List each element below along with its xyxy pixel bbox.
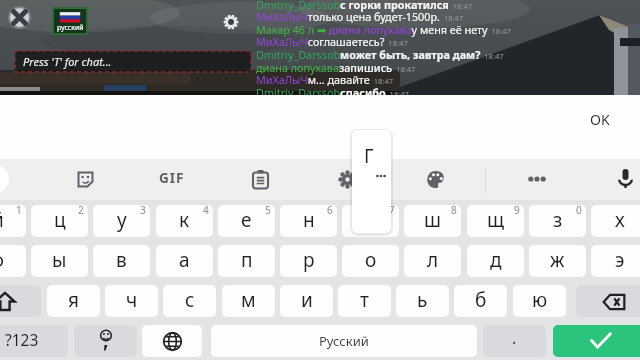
staticText: МиХаЛыЧтолько цена будет-1500р. 18:47	[256, 9, 464, 24]
staticText: GIF	[159, 169, 185, 187]
button[interactable]: н	[280, 205, 337, 237]
button[interactable]: Shift	[0, 285, 41, 317]
button[interactable]: я	[47, 285, 100, 317]
staticText: ф	[0, 247, 5, 273]
button[interactable]: Русский	[211, 325, 477, 357]
button[interactable]: о	[342, 245, 399, 277]
button[interactable]: а	[156, 245, 213, 277]
button[interactable]: ч	[105, 285, 158, 317]
button[interactable]: GIF	[154, 159, 186, 200]
staticText: ж	[550, 247, 565, 273]
other: Clipboard	[252, 170, 269, 189]
staticText: п	[241, 247, 253, 273]
staticText: Press 'T' for chat...	[23, 54, 112, 69]
staticText: к	[179, 207, 190, 233]
button[interactable]: Backspace	[576, 285, 640, 317]
button[interactable]: ж	[529, 245, 586, 277]
button[interactable]: ь	[396, 285, 449, 317]
button[interactable]: Clipboard	[243, 162, 277, 196]
button[interactable]: ?123	[0, 325, 68, 357]
button[interactable]: More options	[520, 162, 554, 196]
staticText: й	[0, 207, 4, 233]
staticText: OK	[590, 110, 610, 129]
button[interactable]: ы	[31, 245, 88, 277]
button[interactable]: э	[591, 245, 640, 277]
staticText: ы	[52, 247, 67, 273]
button[interactable]: Settings	[224, 15, 238, 29]
button[interactable]: е	[218, 205, 275, 237]
staticText: ь	[417, 287, 428, 313]
button[interactable]: г	[342, 205, 399, 237]
staticText: Г	[364, 143, 374, 169]
staticText: 6	[327, 205, 333, 217]
staticText: у	[117, 207, 127, 233]
button[interactable]: м	[222, 285, 275, 317]
button[interactable]: ш	[404, 205, 461, 237]
button[interactable]: х	[591, 205, 640, 237]
button[interactable]: Language	[53, 8, 87, 34]
button[interactable]: Themes	[419, 162, 453, 196]
staticText: диана лопухавазапишись 18:47	[256, 60, 416, 75]
staticText: 8	[451, 205, 457, 217]
staticText: с	[185, 287, 195, 313]
button[interactable]: п	[218, 245, 275, 277]
button[interactable]: .	[483, 325, 546, 357]
button[interactable]: Keyboard settings	[330, 162, 364, 196]
staticText: д	[490, 247, 502, 273]
button[interactable]: т	[338, 285, 391, 317]
button[interactable]: ф	[0, 245, 26, 277]
button[interactable]: и	[280, 285, 333, 317]
button[interactable]: OK	[560, 102, 640, 136]
button[interactable]: л	[404, 245, 461, 277]
staticText: МиХаЛыЧм... давайте 18:47	[256, 72, 394, 87]
button[interactable]: ц	[31, 205, 88, 237]
button[interactable]: с	[163, 285, 216, 317]
button[interactable]: щ	[467, 205, 524, 237]
staticText: б	[475, 287, 487, 313]
button[interactable]: р	[280, 245, 337, 277]
button[interactable]: Search	[0, 165, 9, 193]
staticText: ц	[54, 207, 66, 233]
other: Keyboard settings	[339, 171, 356, 188]
staticText: э	[615, 247, 625, 273]
staticText: русский	[57, 23, 84, 33]
staticText: я	[68, 287, 79, 313]
button[interactable]: з	[529, 205, 586, 237]
button[interactable]: й	[0, 205, 26, 237]
button[interactable]: в	[93, 245, 150, 277]
button[interactable]: д	[467, 245, 524, 277]
staticText: Макар 46 л ➡ диана лопухавау меня её нет…	[256, 22, 511, 37]
staticText: 7	[389, 205, 395, 217]
button[interactable]: Stickers	[68, 162, 102, 196]
staticText: щ	[487, 207, 505, 233]
button[interactable]: Voice input	[608, 162, 640, 196]
other: More options	[527, 169, 547, 189]
staticText: ю	[532, 287, 548, 313]
staticText: 3	[140, 205, 146, 217]
staticText: 9	[514, 205, 520, 217]
staticText: ?123	[5, 329, 39, 350]
staticText: з	[553, 207, 563, 233]
button[interactable]: Enter	[553, 325, 640, 357]
staticText: Русский	[319, 332, 369, 350]
staticText: т	[360, 287, 369, 313]
staticText: е	[241, 207, 252, 233]
staticText: 0	[576, 205, 582, 217]
staticText: в	[116, 247, 127, 273]
button[interactable]: Emoji	[74, 325, 137, 357]
staticText: ч	[126, 287, 138, 313]
staticText: Dmitriy_Darssobспасибо 18:47	[256, 85, 409, 100]
staticText: а	[179, 247, 190, 273]
button[interactable]: Change language	[142, 325, 202, 357]
button[interactable]: к	[156, 205, 213, 237]
staticText: и	[301, 287, 313, 313]
button[interactable]: Close	[8, 6, 31, 29]
staticText: 2	[78, 205, 84, 217]
staticText: н	[303, 207, 315, 233]
other: Themes	[427, 171, 445, 188]
button[interactable]: ю	[513, 285, 566, 317]
button[interactable]: б	[454, 285, 507, 317]
button[interactable]: у	[93, 205, 150, 237]
staticText: ш	[424, 207, 441, 233]
